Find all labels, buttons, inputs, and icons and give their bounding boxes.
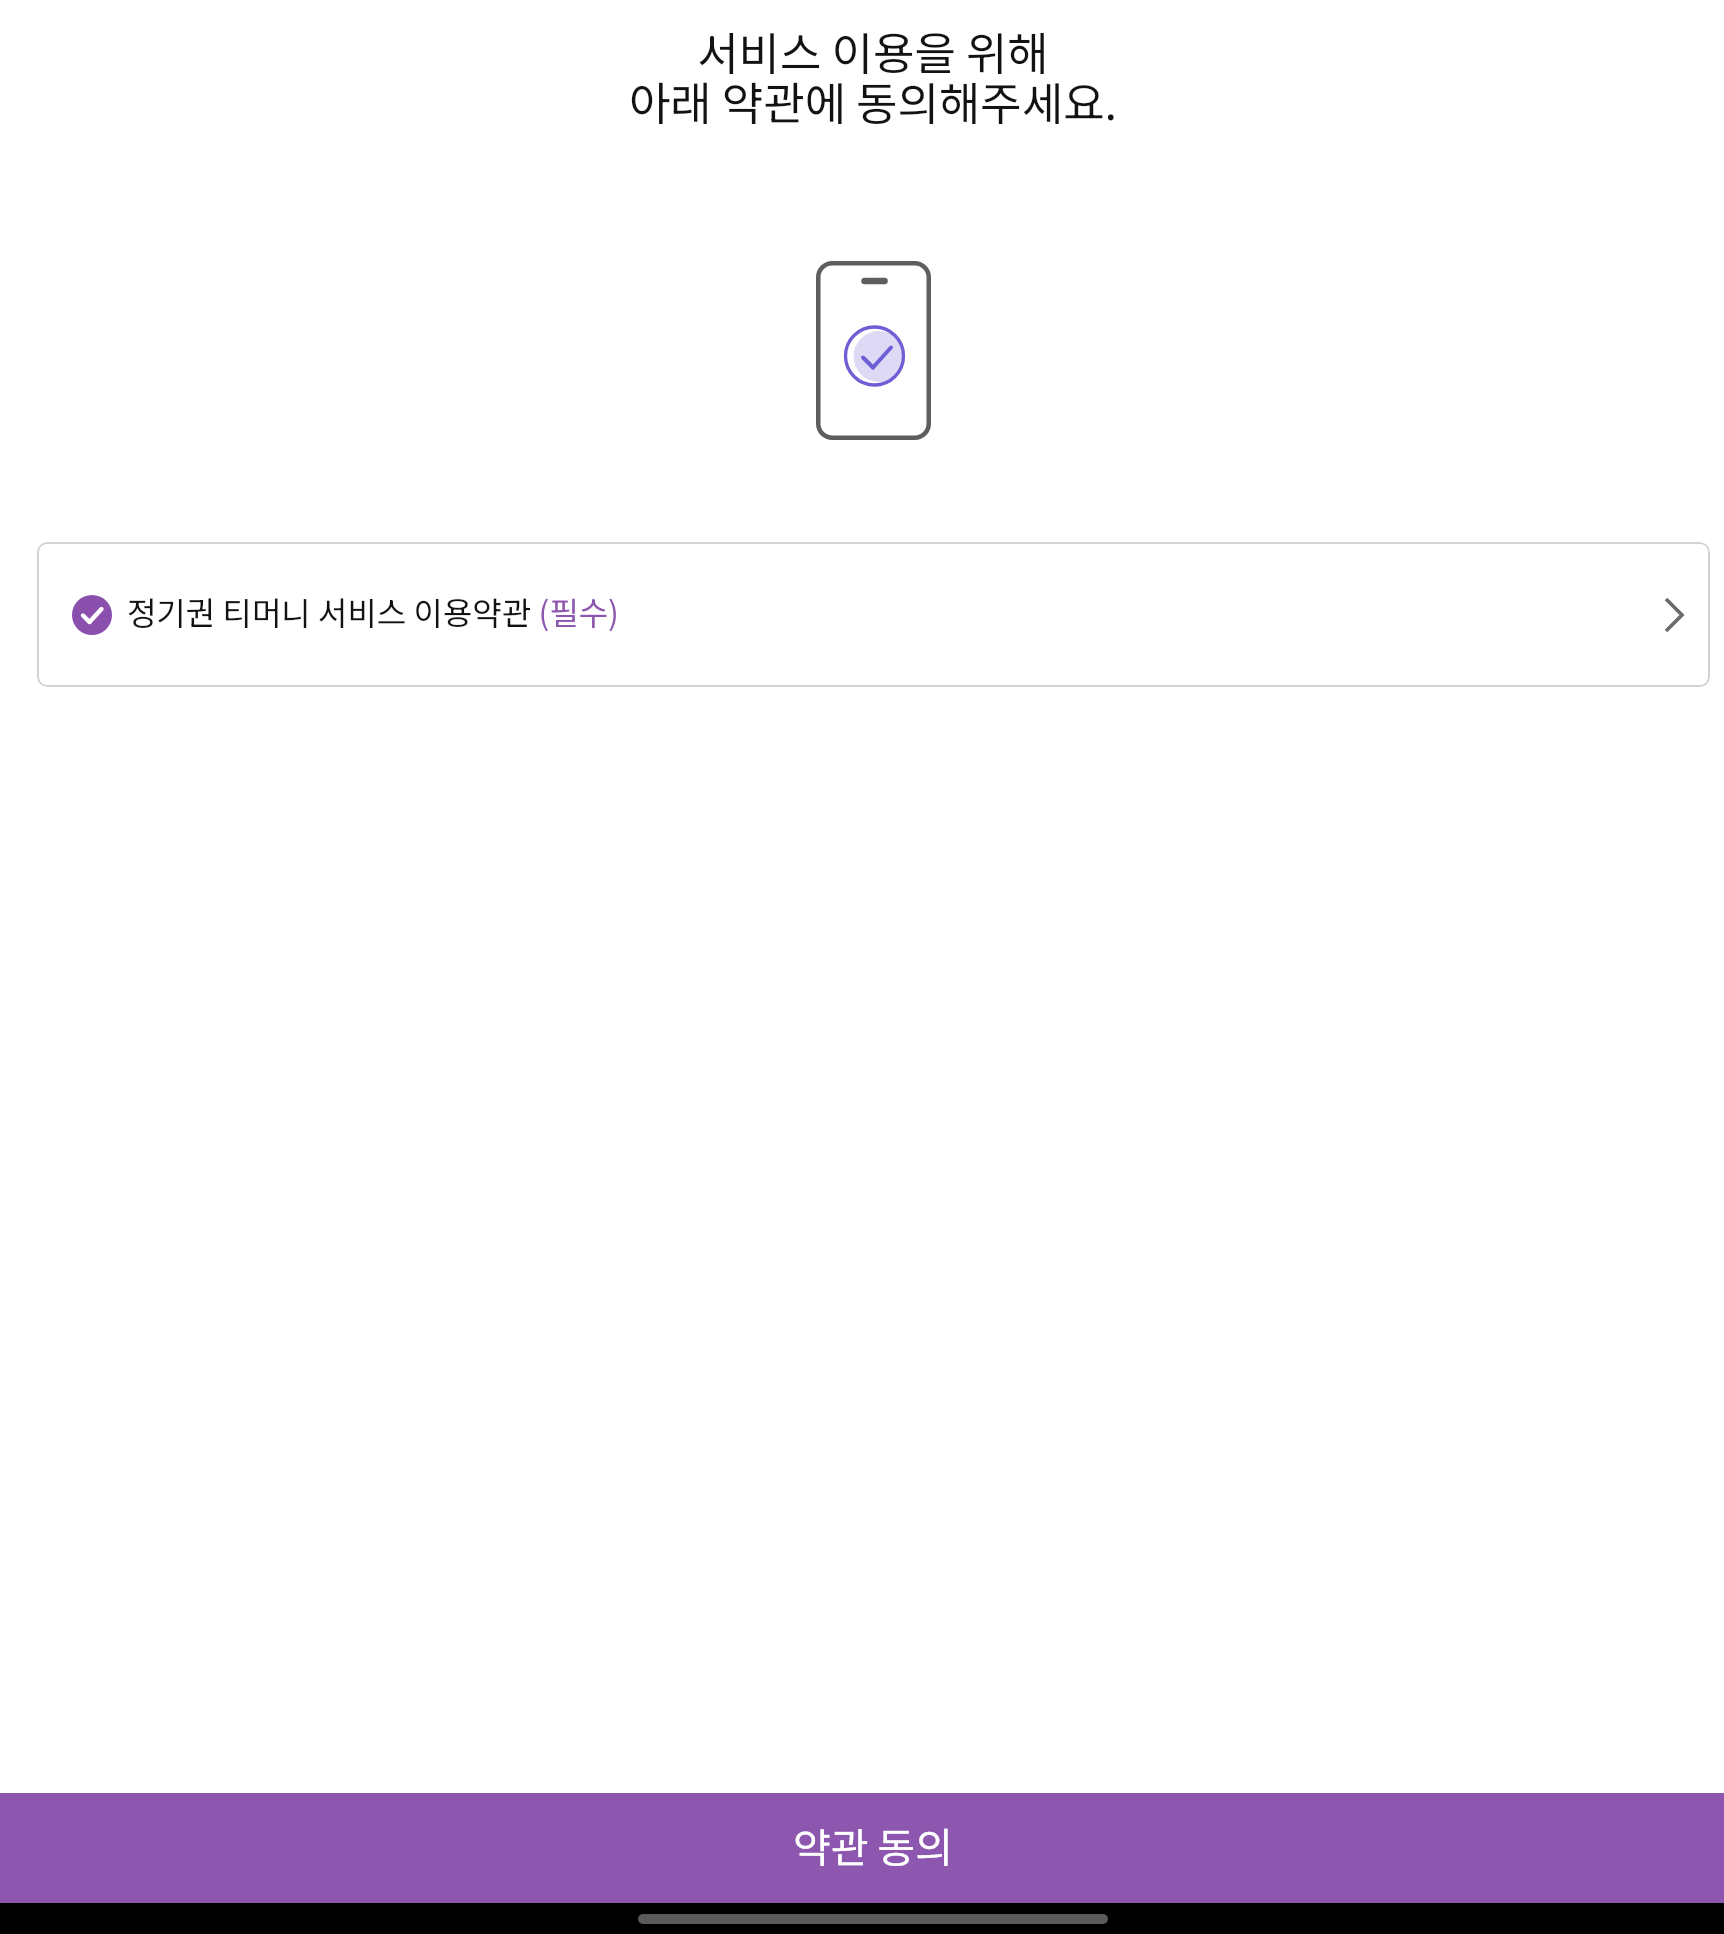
- button[interactable]: 약관 상세 보기: [1620, 575, 1700, 655]
- staticText: 서비스 이용을 위해 아래 약관에 동의해주세요.: [22, 18, 1724, 133]
- staticText: 약관 동의: [793, 1815, 954, 1874]
- staticText: 정기권 티머니 서비스 이용약관 (필수): [127, 588, 619, 634]
- button[interactable]: 정기권 티머니 서비스 이용약관 (필수): [37, 542, 1710, 687]
- button[interactable]: 약관 동의: [0, 1793, 1724, 1903]
